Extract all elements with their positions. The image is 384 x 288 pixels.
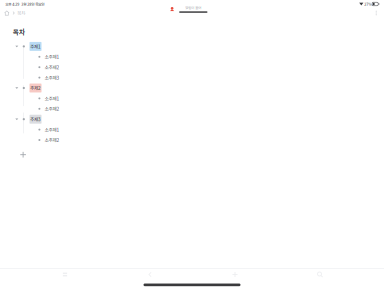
button[interactable]: 소주제1	[0, 124, 384, 135]
staticText: 소주제1	[45, 53, 60, 60]
button[interactable]: 소주제1	[0, 93, 384, 104]
staticText: 알림이 왔어	[185, 5, 201, 10]
staticText: 목차	[17, 10, 25, 16]
staticText: 소주제3	[45, 74, 60, 81]
staticText: 오후 4:29 3월 28일 목요일	[5, 1, 44, 7]
staticText: 소주제1	[45, 95, 60, 102]
button[interactable]: 주제2	[0, 83, 384, 93]
button[interactable]: 소주제2	[0, 62, 384, 72]
button[interactable]: 주제1	[0, 41, 384, 52]
staticText: 소주제2	[45, 64, 60, 71]
button[interactable]: Notification	[166, 2, 222, 16]
staticText: 소주제2	[45, 105, 60, 112]
button[interactable]: 소주제1	[0, 52, 384, 62]
button[interactable]: 소주제2	[0, 104, 384, 114]
staticText: 주제2	[30, 85, 41, 91]
staticText: 목차	[13, 27, 25, 36]
staticText: 27%	[364, 1, 371, 7]
button[interactable]: 소주제2	[0, 135, 384, 145]
button[interactable]: 소주제3	[0, 72, 384, 83]
staticText: 소주제1	[45, 126, 60, 133]
staticText: 주제1	[30, 43, 41, 50]
button[interactable]: Home	[2, 9, 11, 17]
staticText: 주제3	[30, 116, 41, 123]
button[interactable]: 목차	[16, 8, 26, 18]
button[interactable]: More options	[372, 8, 380, 18]
button[interactable]: 주제3	[0, 114, 384, 124]
staticText: 소주제2	[45, 137, 60, 143]
